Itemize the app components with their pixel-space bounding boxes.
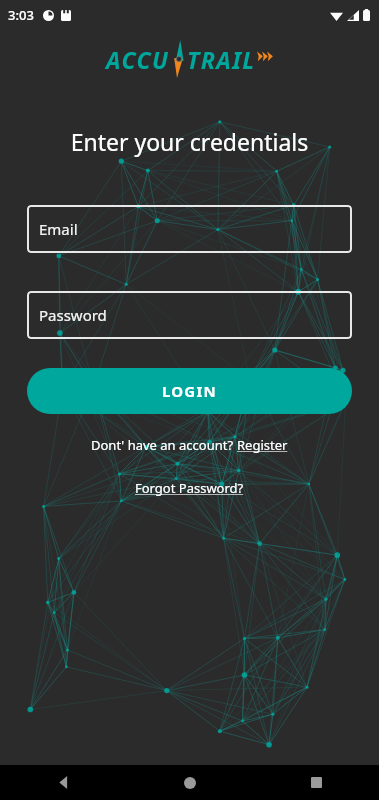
button[interactable]: Recent apps — [253, 765, 379, 800]
staticText: Register — [237, 436, 288, 454]
staticText: Dont' have an account? — [91, 436, 237, 454]
staticText: Enter your credentials — [0, 126, 379, 157]
button[interactable]: Home — [127, 765, 253, 800]
button[interactable]: Forgot Password? — [135, 479, 244, 497]
button[interactable]: Register — [237, 436, 288, 454]
button[interactable]: Email — [27, 205, 352, 253]
staticText: TRAIL — [187, 44, 256, 75]
button[interactable]: Back — [0, 765, 127, 800]
button[interactable]: Password — [27, 291, 352, 339]
staticText: Email — [39, 219, 78, 239]
staticText: Password — [39, 305, 107, 325]
button[interactable]: ACCU — [106, 38, 274, 80]
staticText: 3:03 — [8, 6, 34, 24]
staticText: Forgot Password? — [135, 479, 244, 497]
staticText: LOGIN — [162, 381, 217, 401]
staticText: ACCU — [106, 44, 170, 75]
button[interactable]: LOGIN — [27, 368, 352, 414]
